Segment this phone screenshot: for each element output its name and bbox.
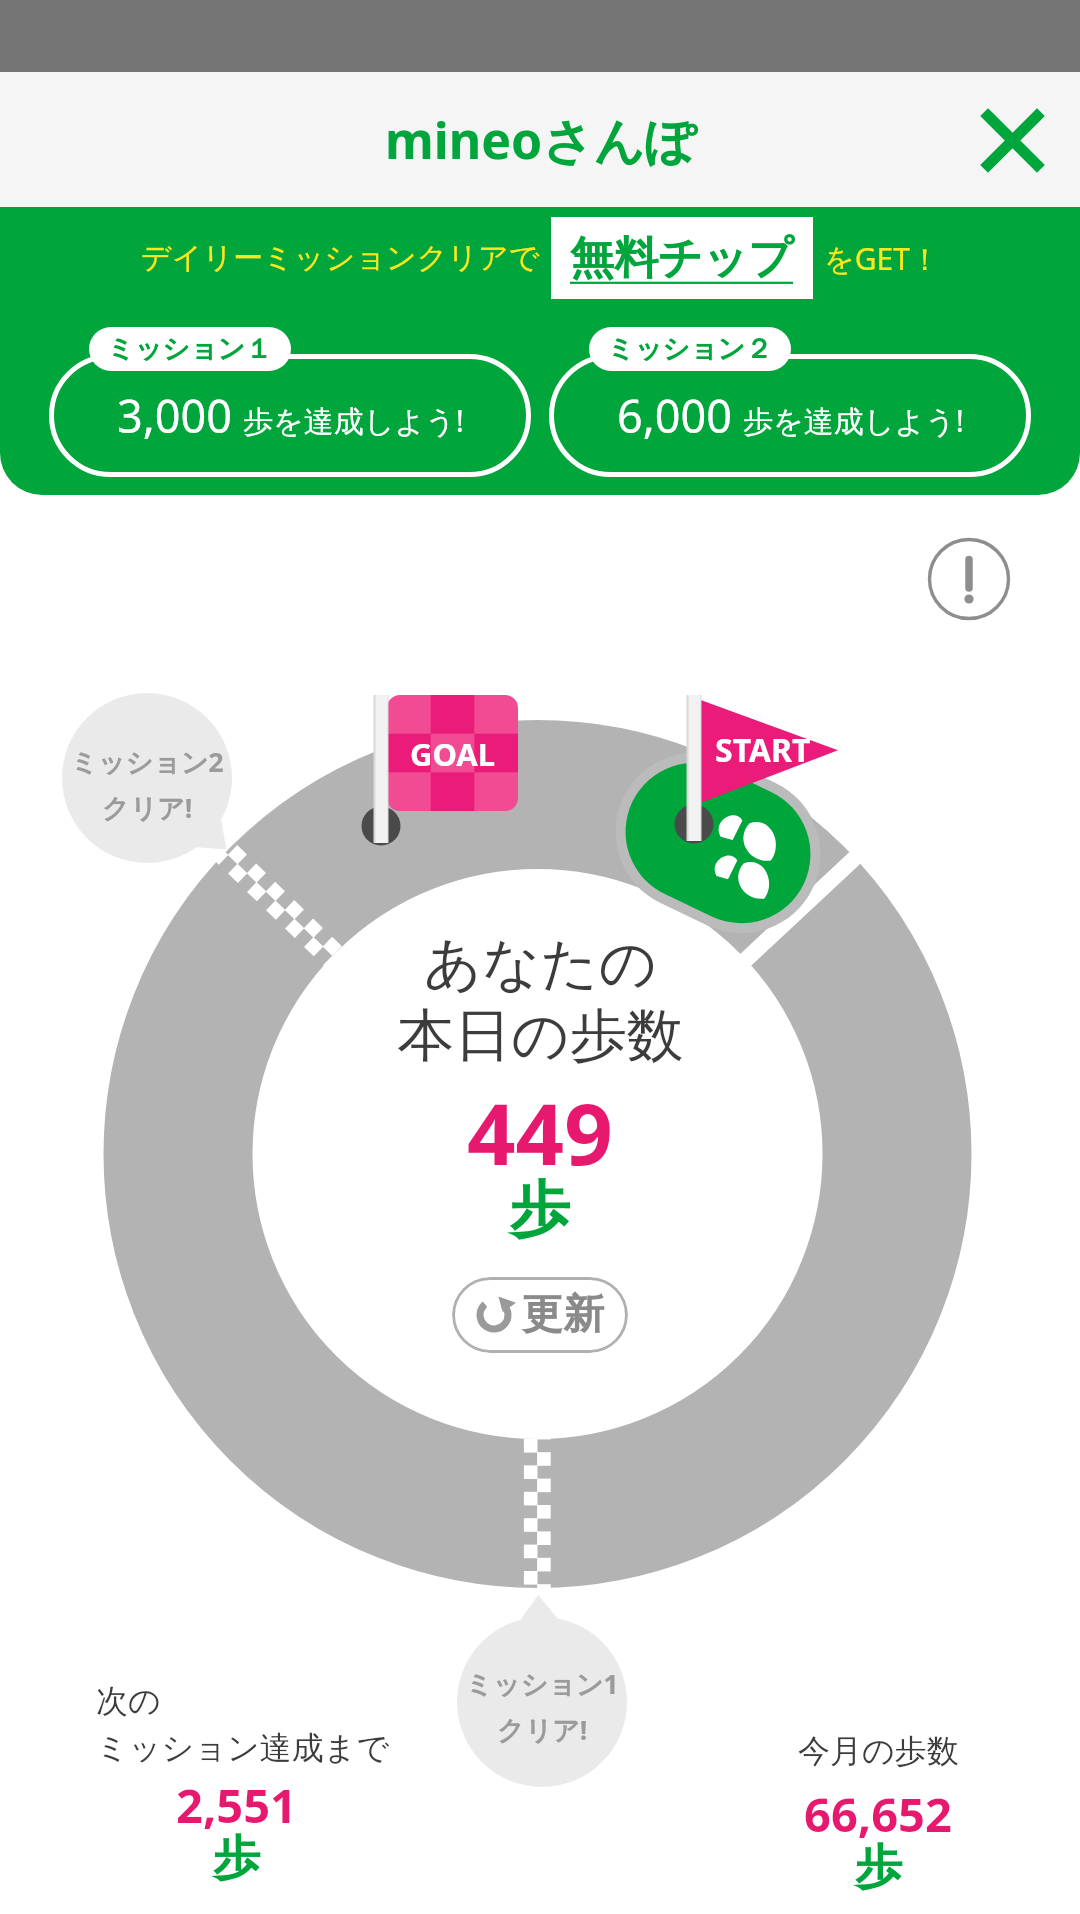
button[interactable]: 6,000 — [549, 354, 1031, 477]
staticText: START — [715, 728, 811, 768]
staticText: 歩を達成しよう! — [743, 400, 964, 441]
staticText: 3,000 — [117, 385, 233, 446]
staticText: あなたの 本日の歩数 — [397, 928, 684, 1072]
button[interactable]: Close — [970, 98, 1054, 182]
staticText: 今月の歩数 — [798, 1731, 959, 1771]
button[interactable]: 更新 — [452, 1277, 628, 1353]
staticText: をGET！ — [824, 238, 940, 279]
staticText: 6,000 — [617, 385, 733, 446]
staticText: mineoさんぽ — [385, 106, 696, 174]
staticText: デイリーミッションクリアで — [141, 239, 540, 277]
staticText: 2,551 — [176, 1773, 297, 1837]
button[interactable]: Info — [927, 537, 1011, 621]
staticText: 歩 — [510, 1172, 570, 1248]
staticText: 66,652 — [804, 1782, 952, 1846]
staticText: ミッション2 クリア! — [70, 743, 224, 826]
staticText: ミッション1 クリア! — [465, 1665, 619, 1748]
staticText: 歩 — [213, 1829, 260, 1888]
button[interactable]: 3,000 — [49, 354, 531, 477]
staticText: ミッション２ — [607, 332, 773, 366]
staticText: 449 — [467, 1074, 613, 1190]
staticText: 歩 — [855, 1838, 902, 1897]
staticText: 歩を達成しよう! — [243, 400, 464, 441]
staticText: 更新 — [522, 1289, 604, 1341]
staticText: ミッション１ — [107, 332, 273, 366]
staticText: 無料チップ — [570, 231, 794, 286]
staticText: GOAL — [410, 733, 496, 773]
staticText: 次の ミッション達成まで — [96, 1681, 390, 1769]
